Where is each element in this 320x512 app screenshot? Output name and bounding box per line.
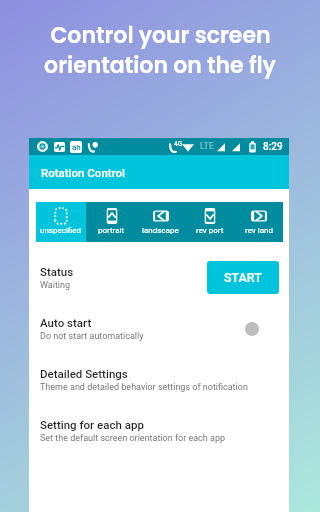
staticText: 4G xyxy=(174,140,183,148)
staticText: Waiting xyxy=(40,280,71,291)
staticText: rev land xyxy=(245,226,273,235)
staticText: Auto start xyxy=(40,316,92,329)
staticText: portrait xyxy=(98,226,125,235)
staticText: Rotation Control xyxy=(41,166,125,179)
button[interactable]: Setting for each app xyxy=(29,411,289,462)
staticText: Do not start automatically xyxy=(40,331,144,342)
button[interactable]: rev port xyxy=(185,202,234,242)
button[interactable]: Detailed Settings xyxy=(29,360,289,411)
staticText: Detailed Settings xyxy=(40,367,128,380)
staticText: Setting for each app xyxy=(40,418,144,431)
staticText: ah xyxy=(72,143,81,152)
staticText: landscape xyxy=(142,226,179,235)
staticText: unspecified xyxy=(40,226,82,235)
staticText: 8:29 xyxy=(263,141,283,153)
staticText: Status xyxy=(40,265,74,278)
staticText: orientation on the fly xyxy=(44,50,276,81)
staticText: Control your screen xyxy=(50,20,271,51)
staticText: Theme and detailed behavior settings of … xyxy=(40,382,248,393)
button[interactable]: Auto start xyxy=(29,309,289,360)
staticText: rev port xyxy=(196,226,224,235)
button[interactable]: rev land xyxy=(234,202,283,242)
button[interactable]: unspecified xyxy=(36,202,86,242)
button[interactable]: START xyxy=(207,261,279,294)
staticText: START xyxy=(224,270,262,285)
button[interactable]: portrait xyxy=(86,202,136,242)
button[interactable]: Status xyxy=(29,258,289,309)
button[interactable]: Auto start switch xyxy=(245,322,259,336)
button[interactable]: landscape xyxy=(136,202,185,242)
staticText: LTE xyxy=(200,141,214,151)
staticText: Set the default screen orientation for e… xyxy=(40,433,226,444)
